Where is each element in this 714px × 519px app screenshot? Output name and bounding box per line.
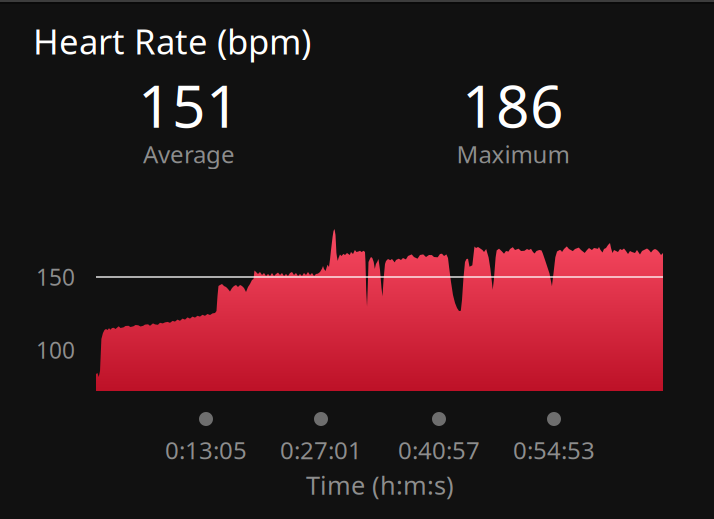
staticText: Time (h:m:s)	[306, 468, 454, 502]
staticText: 100	[36, 335, 75, 365]
staticText: Heart Rate (bpm)	[33, 18, 311, 64]
staticText: 151	[138, 66, 240, 144]
staticText: Maximum	[456, 138, 569, 170]
staticText: Average	[143, 138, 235, 170]
staticText: 0:13:05	[165, 434, 247, 466]
staticText: 186	[462, 66, 564, 144]
staticText: 0:40:57	[398, 434, 480, 466]
staticText: 150	[36, 262, 75, 292]
staticText: 0:54:53	[513, 434, 595, 466]
staticText: 0:27:01	[280, 434, 362, 466]
